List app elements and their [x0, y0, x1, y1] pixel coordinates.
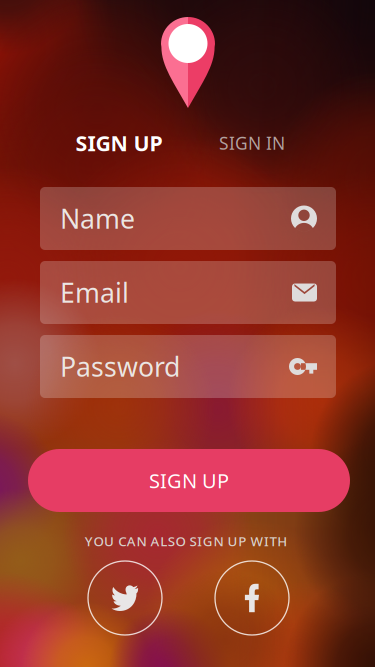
staticText: Name: [60, 201, 135, 236]
button[interactable]: Sign up with Twitter: [88, 561, 162, 635]
staticText: Email: [60, 275, 129, 310]
button[interactable]: Sign up with Facebook: [215, 561, 289, 635]
staticText: SIGN IN: [219, 131, 285, 154]
button[interactable]: SIGN UP: [28, 449, 350, 512]
button[interactable]: SIGN UP: [64, 126, 174, 160]
staticText: Password: [60, 349, 180, 384]
button[interactable]: SIGN IN: [207, 128, 297, 158]
button[interactable]: Email: [40, 261, 336, 324]
button[interactable]: Password: [40, 335, 336, 398]
staticText: SIGN UP: [75, 129, 162, 157]
staticText: SIGN UP: [149, 467, 229, 494]
button[interactable]: Name: [40, 187, 336, 250]
staticText: YOU CAN ALSO SIGN UP WITH: [85, 532, 287, 550]
